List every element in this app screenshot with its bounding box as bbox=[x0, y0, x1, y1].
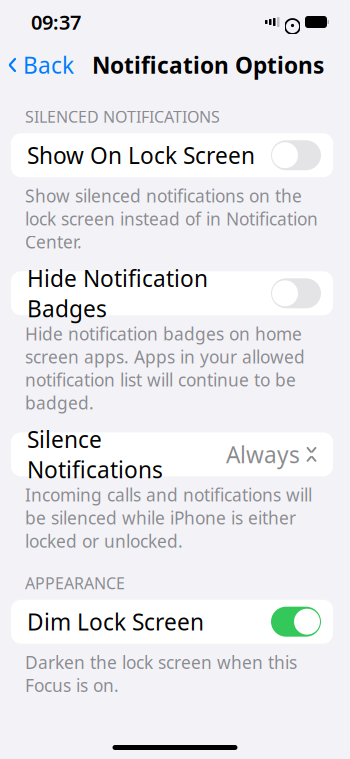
staticText: Show On Lock Screen bbox=[27, 140, 255, 170]
button[interactable]: Hide Notification Badges bbox=[11, 271, 333, 315]
staticText: Darken the lock screen when this Focus i… bbox=[25, 651, 297, 697]
button[interactable]: Show On Lock Screen bbox=[11, 133, 333, 177]
button[interactable]: Silence Notifications bbox=[11, 432, 333, 476]
staticText: Dim Lock Screen bbox=[27, 607, 204, 637]
staticText: Incoming calls and notifications will be… bbox=[25, 483, 312, 552]
staticText: Hide Notification Badges bbox=[27, 263, 208, 323]
staticText: Always bbox=[226, 439, 300, 469]
staticText: Silence Notifications bbox=[27, 424, 163, 484]
staticText: SILENCED NOTIFICATIONS bbox=[25, 106, 220, 127]
staticText: Back bbox=[23, 50, 74, 80]
staticText: APPEARANCE bbox=[25, 572, 125, 594]
button[interactable]: Dim Lock Screen bbox=[11, 600, 333, 644]
staticText: Hide notification badges on home screen … bbox=[25, 322, 305, 414]
button[interactable]: Back bbox=[0, 45, 80, 85]
staticText: Notification Options bbox=[92, 50, 324, 80]
staticText: 09:37 bbox=[31, 9, 81, 35]
staticText: Show silenced notifications on the lock … bbox=[25, 184, 318, 253]
